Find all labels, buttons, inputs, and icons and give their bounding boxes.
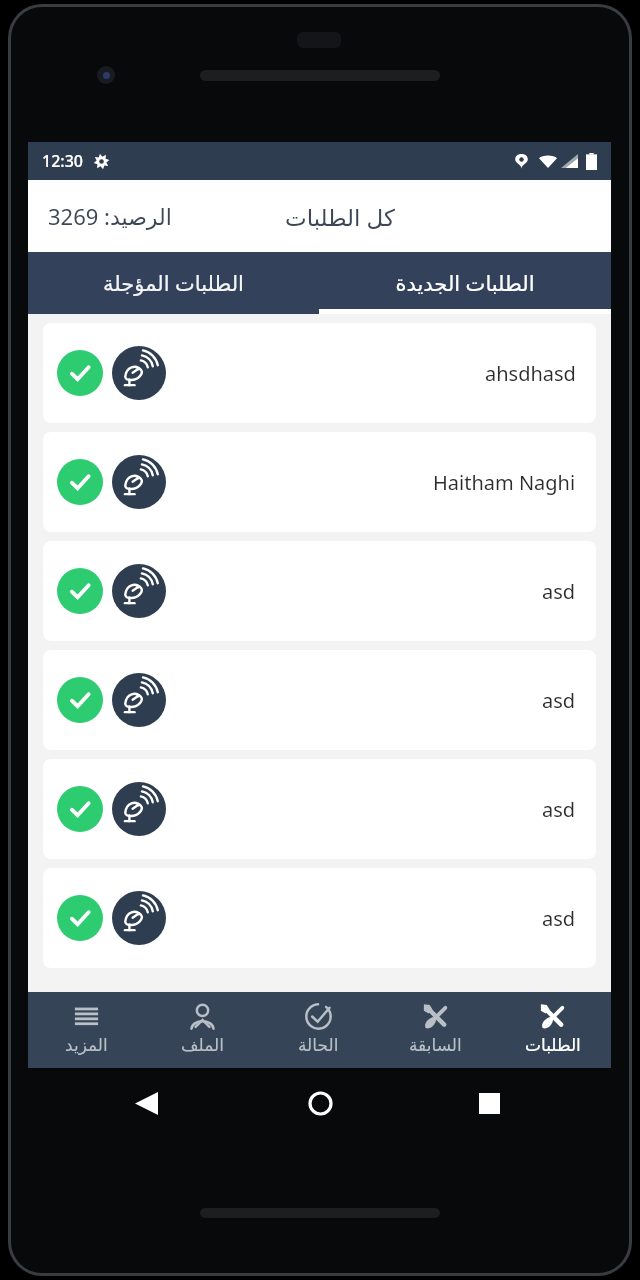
button[interactable]: More [28,992,144,1068]
staticText: السابقة [409,1035,462,1055]
button[interactable]: الطلبات الجديدة [319,252,611,314]
button[interactable]: asd [43,541,596,641]
button[interactable]: Orders [494,992,611,1068]
staticText: ahsdhasd [485,360,576,387]
button[interactable]: asd [43,650,596,750]
staticText: الطلبات الجديدة [395,269,535,298]
staticText: الطلبات [525,1035,581,1055]
staticText: asd [542,905,576,932]
button[interactable]: asd [43,868,596,968]
button[interactable]: Profile [144,992,260,1068]
button[interactable]: الطلبات المؤجلة [28,252,319,314]
button[interactable]: Status [260,992,377,1068]
button[interactable]: Haitham Naghi [43,432,596,532]
staticText: Haitham Naghi [433,469,576,496]
button[interactable]: asd [43,759,596,859]
staticText: asd [542,796,576,823]
staticText: الملف [181,1035,224,1055]
staticText: الرصيد: 3269 [48,201,172,231]
staticText: asd [542,578,576,605]
button[interactable]: ahsdhasd [43,323,596,423]
staticText: الطلبات المؤجلة [103,269,244,298]
staticText: asd [542,687,576,714]
staticText: 12:30 [42,150,83,172]
staticText: كل الطلبات [285,201,395,232]
staticText: الحالة [298,1035,339,1055]
button[interactable]: Previous [377,992,494,1068]
staticText: المزيد [65,1035,108,1055]
